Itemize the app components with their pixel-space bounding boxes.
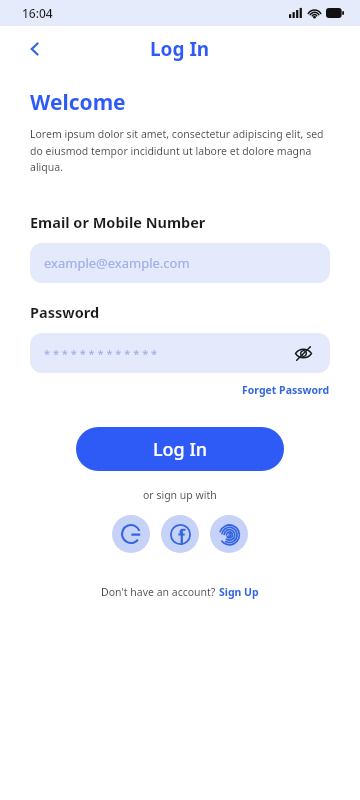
staticText: Sign Up: [219, 585, 259, 599]
button[interactable]: Forget Password: [242, 383, 330, 397]
staticText: Forget Password: [242, 383, 330, 397]
button[interactable]: Log In: [76, 427, 284, 471]
button[interactable]: Show password: [290, 340, 316, 366]
staticText: Don't have an account?: [101, 585, 219, 599]
staticText: Log In: [153, 437, 208, 462]
staticText: Log In: [150, 36, 210, 62]
button[interactable]: Sign Up: [219, 585, 259, 599]
staticText: * * * * * * * * * * * * *: [44, 346, 158, 361]
staticText: 16:04: [22, 5, 53, 21]
staticText: example@example.com: [44, 254, 190, 272]
staticText: Password: [30, 302, 100, 322]
button[interactable]: Sign in with Google: [112, 515, 150, 553]
staticText: Email or Mobile Number: [30, 212, 206, 232]
button[interactable]: Sign in with Facebook: [161, 515, 199, 553]
button[interactable]: * * * * * * * * * * * * *: [30, 333, 330, 373]
staticText: Lorem ipsum dolor sit amet, consectetur …: [30, 127, 330, 174]
button[interactable]: Back: [20, 34, 50, 64]
staticText: Welcome: [30, 88, 126, 117]
staticText: or sign up with: [143, 488, 217, 502]
button[interactable]: example@example.com: [30, 243, 330, 283]
button[interactable]: Sign in with fingerprint: [210, 515, 248, 553]
